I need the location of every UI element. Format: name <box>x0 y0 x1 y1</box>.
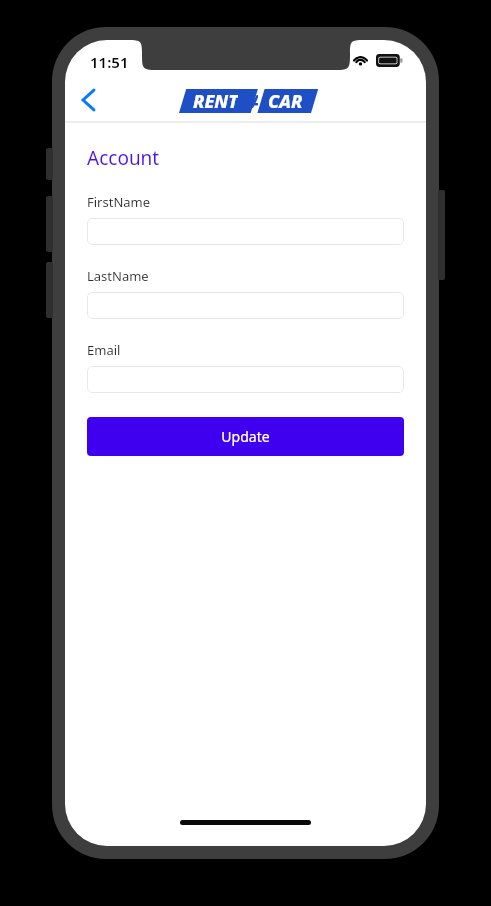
button[interactable]: Text input <box>87 292 404 319</box>
staticText: RENT <box>193 89 238 113</box>
staticText: LastName <box>87 267 149 285</box>
staticText: CAR <box>268 89 303 113</box>
button[interactable]: Text input <box>87 218 404 245</box>
button[interactable]: Update <box>87 417 404 456</box>
staticText: Email <box>87 341 121 359</box>
staticText: A <box>251 89 258 113</box>
button[interactable]: Back <box>69 81 107 119</box>
staticText: Account <box>87 145 160 171</box>
button[interactable]: Text input <box>87 366 404 393</box>
staticText: Update <box>221 427 270 446</box>
staticText: FirstName <box>87 193 151 211</box>
staticText: 11:51 <box>90 52 129 72</box>
